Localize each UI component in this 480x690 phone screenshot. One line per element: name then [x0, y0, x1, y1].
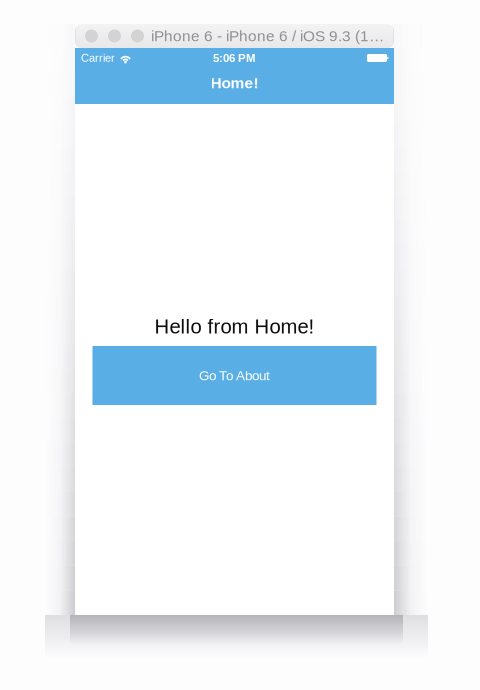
staticText: iPhone 6 - iPhone 6 / iOS 9.3 (1… [151, 27, 384, 44]
button[interactable]: Go To About [92, 346, 376, 405]
staticText: 5:06 PM [213, 52, 256, 64]
staticText: Hello from Home! [154, 315, 314, 338]
staticText: Home! [210, 74, 258, 92]
staticText: Go To About [199, 368, 270, 383]
staticText: Carrier [81, 52, 115, 64]
